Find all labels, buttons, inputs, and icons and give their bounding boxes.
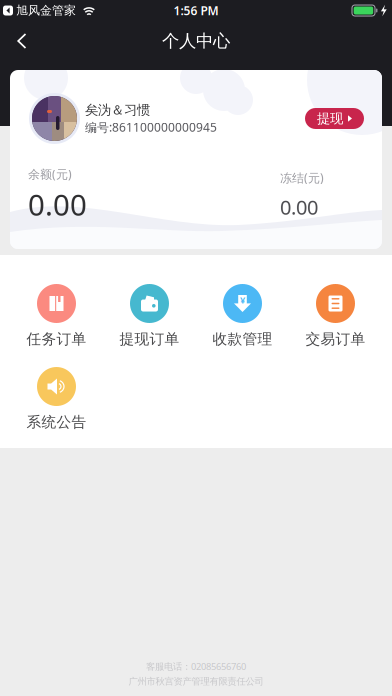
staticText: 编号:861100000000945 bbox=[85, 119, 217, 135]
button[interactable]: 提现订单 bbox=[103, 284, 196, 348]
staticText: ¥ bbox=[240, 294, 245, 306]
button[interactable]: Back to 旭风金管家 bbox=[3, 3, 76, 18]
staticText: 广州市秋宫资产管理有限责任公司 bbox=[128, 675, 263, 687]
button[interactable]: 任务订单 bbox=[10, 284, 103, 348]
staticText: 0.00 bbox=[28, 185, 87, 224]
staticText: 交易订单 bbox=[305, 330, 365, 348]
staticText: 提现订单 bbox=[119, 330, 179, 348]
staticText: 个人中心 bbox=[162, 30, 230, 52]
staticText: 提现 bbox=[317, 110, 343, 127]
staticText: 收款管理 bbox=[212, 330, 272, 348]
staticText: 1:56 PM bbox=[173, 2, 218, 18]
staticText: 0.00 bbox=[280, 194, 318, 220]
button[interactable]: 系统公告 bbox=[10, 367, 103, 431]
staticText: 系统公告 bbox=[26, 413, 86, 431]
button[interactable]: 交易订单 bbox=[289, 284, 382, 348]
button[interactable]: 提现 bbox=[305, 108, 364, 129]
staticText: 任务订单 bbox=[26, 330, 86, 348]
staticText: 客服电话：02085656760 bbox=[146, 660, 246, 672]
staticText: 余额(元) bbox=[28, 166, 72, 182]
staticText: 旭风金管家 bbox=[16, 3, 76, 18]
staticText: 冻结(元) bbox=[280, 170, 324, 186]
button[interactable]: Back bbox=[0, 21, 44, 61]
button[interactable]: ¥ bbox=[196, 284, 289, 348]
staticText: 矣沩＆习惯 bbox=[85, 102, 150, 118]
